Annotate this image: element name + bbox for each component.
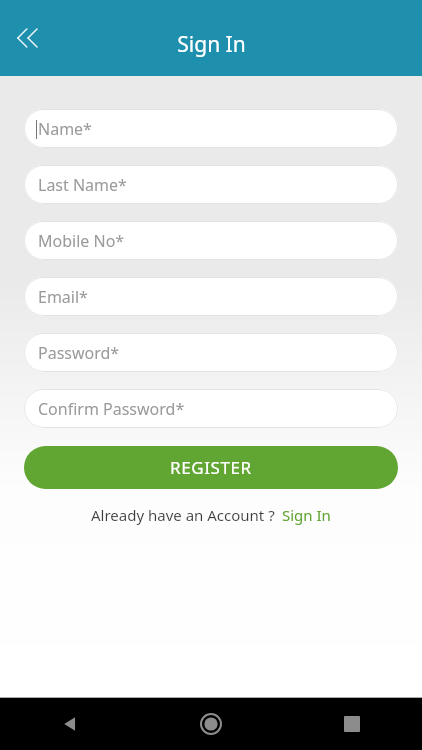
- button[interactable]: Mobile No*: [24, 221, 398, 260]
- staticText: Name*: [38, 118, 92, 140]
- button[interactable]: Back: [4, 14, 52, 62]
- staticText: Email*: [38, 286, 88, 308]
- button[interactable]: Confirm Password*: [24, 389, 398, 428]
- staticText: Sign In: [282, 505, 331, 525]
- staticText: REGISTER: [170, 456, 252, 479]
- staticText: Already have an Account ?: [91, 505, 275, 525]
- button[interactable]: Back: [0, 698, 140, 750]
- staticText: Sign In: [177, 30, 246, 59]
- staticText: Last Name*: [38, 174, 127, 196]
- staticText: Password*: [38, 342, 120, 364]
- button[interactable]: Email*: [24, 277, 398, 316]
- staticText: Confirm Password*: [38, 398, 185, 420]
- button[interactable]: Last Name*: [24, 165, 398, 204]
- button[interactable]: Name*: [24, 109, 398, 148]
- button[interactable]: Password*: [24, 333, 398, 372]
- staticText: Mobile No*: [38, 230, 125, 252]
- button[interactable]: REGISTER: [24, 446, 398, 489]
- button[interactable]: Recent apps: [281, 698, 422, 750]
- button[interactable]: Home: [140, 698, 281, 750]
- button[interactable]: Sign In: [282, 505, 331, 525]
